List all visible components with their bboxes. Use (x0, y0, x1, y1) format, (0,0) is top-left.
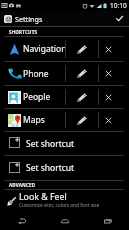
staticText: Set shortcut (26, 138, 75, 150)
staticText: ADVANCED (9, 182, 36, 188)
button[interactable]: Back (0, 212, 43, 230)
button[interactable]: Edit Phone (66, 62, 98, 85)
staticText: Customize skin, colors and font size (19, 202, 100, 209)
button[interactable]: Look & Feel (0, 190, 129, 212)
staticText: People (23, 91, 51, 103)
button[interactable]: Edit Navigation (66, 37, 98, 61)
button[interactable]: Set shortcut (0, 132, 129, 155)
staticText: Navigation (23, 43, 67, 55)
button[interactable]: Recent apps (86, 212, 129, 230)
button[interactable]: Delete Navigation (99, 37, 117, 61)
button[interactable]: Edit Maps (66, 109, 98, 131)
staticText: Set shortcut (26, 162, 75, 174)
button[interactable]: Home (43, 212, 86, 230)
button[interactable]: Done (109, 11, 129, 26)
staticText: Settings (15, 14, 43, 24)
button[interactable]: Navigation (0, 37, 65, 61)
button[interactable]: Edit People (66, 86, 98, 108)
staticText: 10:10 (110, 1, 127, 10)
staticText: Phone (23, 68, 49, 80)
button[interactable]: Maps (0, 109, 65, 131)
button[interactable]: People (0, 86, 65, 108)
button[interactable]: Delete Phone (99, 62, 117, 85)
staticText: Look & Feel (19, 191, 67, 203)
button[interactable]: Set shortcut (0, 156, 129, 180)
button[interactable]: Phone (0, 62, 65, 85)
button[interactable]: Delete Maps (99, 109, 117, 131)
staticText: Maps (23, 114, 45, 126)
staticText: SHORTCUTS (9, 29, 38, 35)
button[interactable]: Delete People (99, 86, 117, 108)
